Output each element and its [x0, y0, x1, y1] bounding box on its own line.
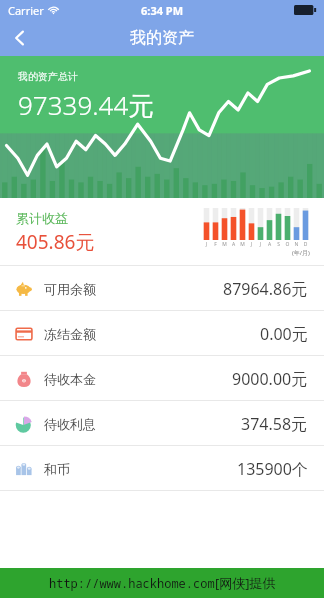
staticText: 405.86元: [16, 229, 95, 255]
staticText: 0.00元: [260, 323, 308, 345]
staticText: M: [220, 241, 229, 248]
staticText: 我的资产总计: [18, 70, 78, 83]
staticText: F: [211, 241, 220, 248]
button[interactable]: 待收利息: [0, 401, 324, 446]
staticText: 累计收益: [16, 210, 68, 226]
staticText: N: [292, 241, 301, 248]
staticText: 和币: [44, 461, 70, 477]
button[interactable]: 和币: [0, 446, 324, 491]
staticText: 待收利息: [44, 416, 96, 432]
staticText: http://www.hackhome.com: [49, 575, 215, 591]
button[interactable]: 冻结金额: [0, 311, 324, 356]
staticText: 待收本金: [44, 371, 96, 387]
staticText: 可用余额: [44, 281, 96, 297]
staticText: (年/月): [292, 249, 310, 257]
button[interactable]: 可用余额: [0, 266, 324, 311]
staticText: A: [265, 241, 274, 248]
button[interactable]: Back: [0, 20, 40, 56]
staticText: 冻结金额: [44, 326, 96, 342]
staticText: D: [301, 241, 310, 248]
staticText: 87964.86元: [223, 278, 308, 300]
staticText: 135900个: [237, 458, 308, 480]
staticText: [网侠]提供: [215, 574, 276, 592]
button[interactable]: 待收本金: [0, 356, 324, 401]
staticText: 9000.00元: [232, 368, 308, 390]
staticText: O: [283, 241, 292, 248]
staticText: 374.58元: [241, 413, 308, 435]
staticText: M: [238, 241, 247, 248]
staticText: Carrier: [8, 3, 44, 18]
staticText: 6:34 PM: [141, 3, 184, 18]
staticText: 97339.44元: [18, 87, 155, 123]
staticText: J: [256, 241, 265, 248]
staticText: 我的资产: [130, 28, 194, 48]
staticText: J: [247, 241, 256, 248]
staticText: A: [229, 241, 238, 248]
staticText: J: [202, 241, 211, 248]
button[interactable]: 累计收益: [0, 198, 324, 266]
staticText: S: [274, 241, 283, 248]
